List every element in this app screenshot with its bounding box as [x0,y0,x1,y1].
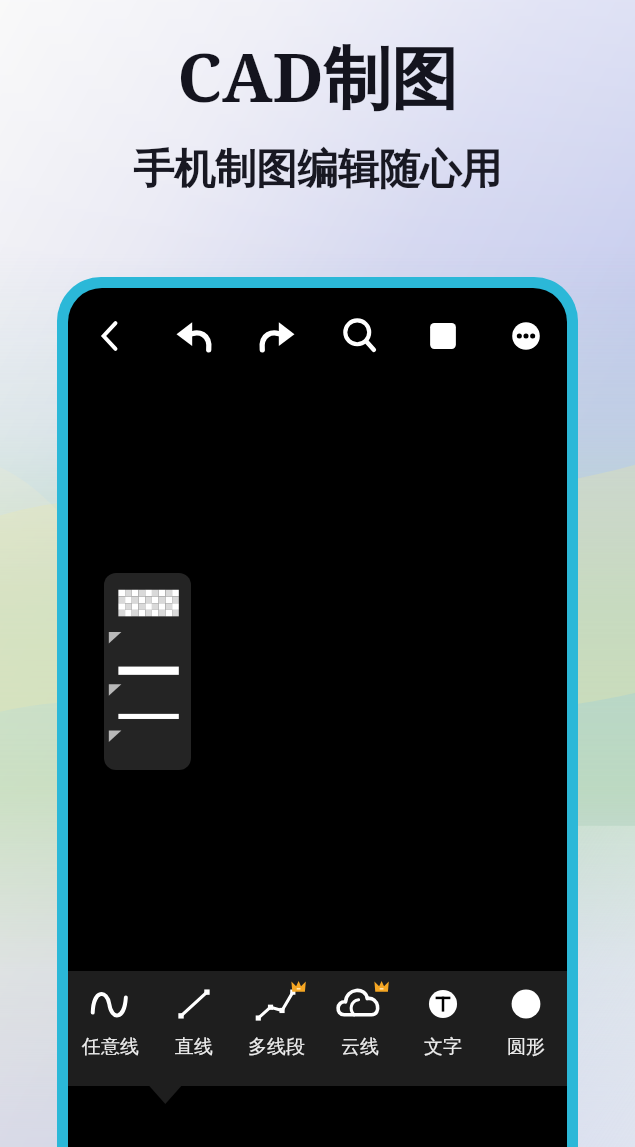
button[interactable]: 云线 [318,977,401,1086]
staticText: 直线 [175,1035,213,1059]
staticText: 圆形 [507,1035,545,1059]
button[interactable]: Redo [235,288,318,384]
button[interactable]: 任意线 [68,977,152,1086]
button[interactable]: 文字 [401,977,484,1086]
staticText: 云线 [341,1035,379,1059]
staticText: 任意线 [82,1035,139,1059]
staticText: 文字 [424,1035,462,1059]
staticText: 多线段 [248,1035,305,1059]
staticText: 手机制图编辑随心用 [133,144,502,196]
button[interactable]: 圆形 [484,977,567,1086]
button[interactable]: 直线 [152,977,235,1086]
button[interactable]: Search [318,288,401,384]
button[interactable]: 多线段 [235,977,318,1086]
button[interactable]: More options [484,288,567,384]
button[interactable]: Back [68,288,152,384]
button[interactable]: Shape [401,288,484,384]
button[interactable]: Stroke style palette [104,573,191,770]
button[interactable]: Undo [152,288,235,384]
staticText: CAD制图 [177,30,458,122]
